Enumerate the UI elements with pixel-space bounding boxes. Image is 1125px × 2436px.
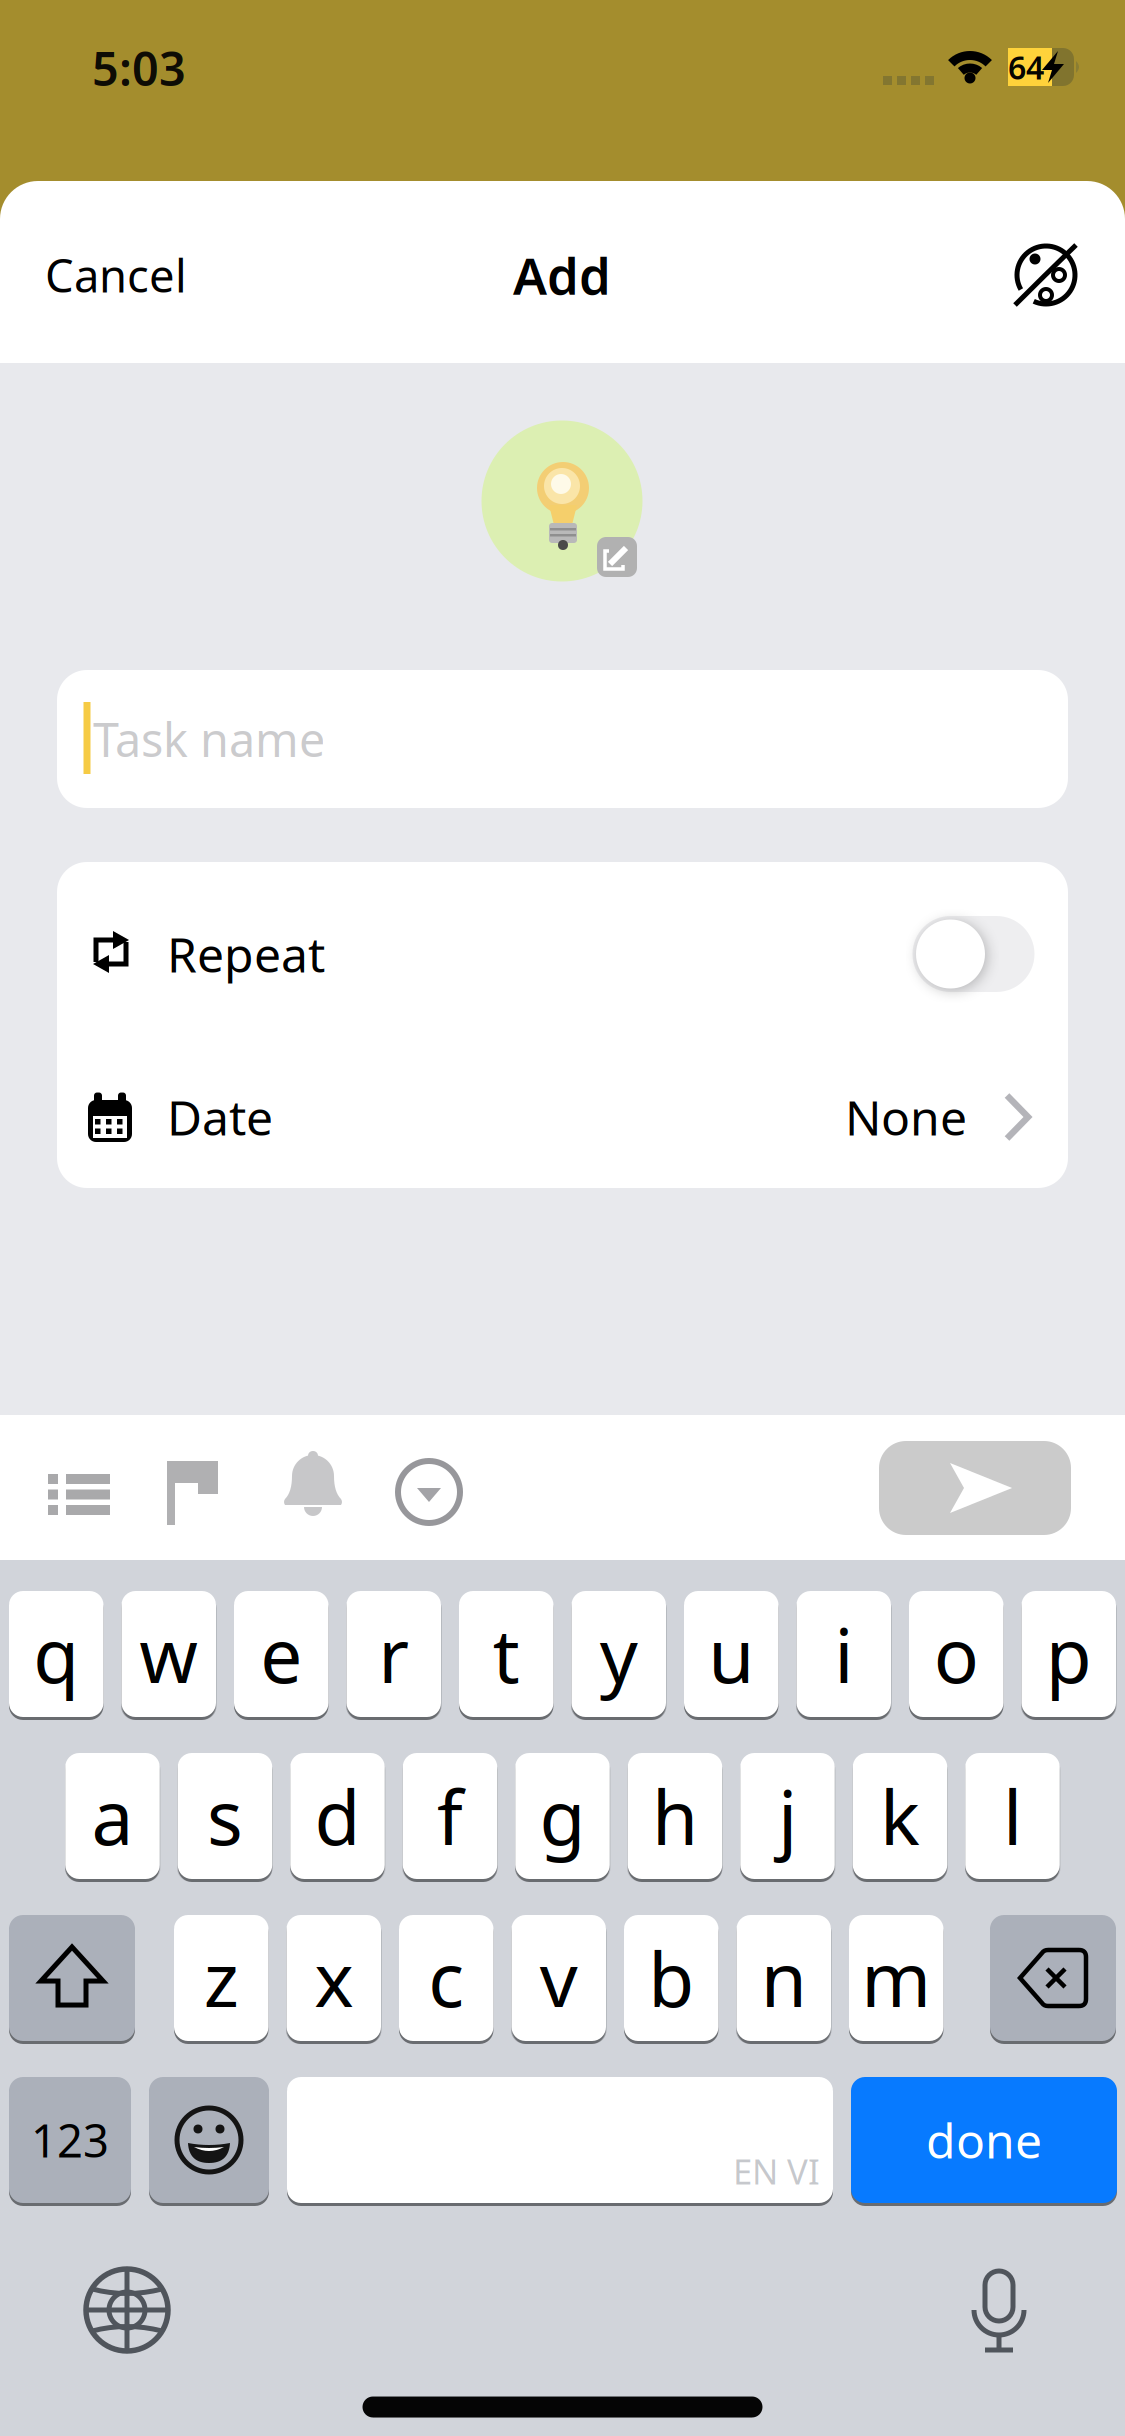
staticText: EN VI — [733, 2148, 820, 2194]
button[interactable]: done — [851, 2077, 1117, 2203]
button[interactable]: t — [459, 1591, 553, 1717]
staticText: h — [652, 1766, 698, 1866]
staticText: b — [648, 1928, 694, 2028]
staticText: Repeat — [167, 922, 325, 986]
staticText: c — [428, 1928, 464, 2028]
button[interactable]: m — [849, 1915, 943, 2041]
staticText: None — [845, 1085, 967, 1149]
button[interactable]: Dictate — [949, 2263, 1049, 2363]
button[interactable]: Collapse — [384, 1447, 474, 1537]
button[interactable]: k — [853, 1753, 947, 1879]
staticText: o — [934, 1604, 979, 1704]
button[interactable]: Edit icon — [597, 537, 637, 577]
button[interactable]: l — [965, 1753, 1060, 1879]
button[interactable]: Priority — [152, 1447, 242, 1537]
button[interactable]: e — [234, 1591, 328, 1717]
staticText: j — [778, 1766, 797, 1866]
button[interactable]: q — [9, 1591, 103, 1717]
button[interactable]: c — [399, 1915, 493, 2041]
button[interactable]: Shift — [9, 1915, 135, 2041]
button[interactable]: Emoji — [149, 2077, 269, 2203]
staticText: a — [91, 1766, 133, 1866]
staticText: 123 — [31, 2110, 109, 2170]
staticText: u — [708, 1604, 754, 1704]
button[interactable]: Cancel — [6, 220, 226, 330]
button[interactable]: u — [684, 1591, 778, 1717]
staticText: q — [33, 1604, 79, 1704]
button[interactable]: d — [290, 1753, 385, 1879]
staticText: z — [204, 1928, 239, 2028]
button[interactable]: i — [796, 1591, 891, 1717]
staticText: p — [1046, 1604, 1092, 1704]
staticText: x — [314, 1928, 353, 2028]
button[interactable]: x — [286, 1915, 381, 2041]
button[interactable]: 123 — [9, 2077, 131, 2203]
button[interactable]: Delete — [990, 1915, 1116, 2041]
button[interactable]: Save — [879, 1441, 1071, 1535]
button[interactable]: Lists — [34, 1446, 124, 1536]
staticText: i — [834, 1604, 853, 1704]
staticText: 64 — [1008, 46, 1044, 88]
staticText: Cancel — [45, 245, 187, 305]
staticText: d — [314, 1766, 360, 1866]
button[interactable]: b — [624, 1915, 718, 2041]
button[interactable]: w — [121, 1591, 216, 1717]
staticText: s — [207, 1766, 243, 1866]
staticText: n — [761, 1928, 807, 2028]
staticText: l — [1003, 1766, 1022, 1866]
staticText: Add — [513, 241, 611, 309]
button[interactable]: a — [65, 1753, 160, 1879]
button[interactable]: Repeat — [912, 916, 1034, 992]
button[interactable]: o — [909, 1591, 1003, 1717]
staticText: k — [880, 1766, 920, 1866]
staticText: v — [540, 1928, 578, 2028]
button[interactable]: g — [515, 1753, 610, 1879]
button[interactable]: h — [628, 1753, 722, 1879]
staticText: 5:03 — [92, 37, 186, 99]
button[interactable]: f — [403, 1753, 497, 1879]
staticText: m — [861, 1928, 931, 2028]
staticText: y — [600, 1604, 638, 1704]
button[interactable]: Theme — [991, 220, 1101, 330]
button[interactable]: n — [736, 1915, 831, 2041]
button[interactable]: v — [511, 1915, 606, 2041]
button[interactable]: Next keyboard — [77, 2260, 177, 2360]
button[interactable]: p — [1021, 1591, 1116, 1717]
staticText: Date — [167, 1085, 273, 1149]
button[interactable]: Date — [57, 1035, 1068, 1198]
staticText: f — [437, 1766, 463, 1866]
button[interactable]: r — [346, 1591, 441, 1717]
staticText: e — [260, 1604, 302, 1704]
button[interactable]: z — [174, 1915, 268, 2041]
staticText: Task name — [93, 708, 325, 770]
staticText: r — [378, 1604, 409, 1704]
button[interactable]: Space — [287, 2077, 833, 2203]
staticText: w — [139, 1604, 198, 1704]
staticText: t — [493, 1604, 520, 1704]
button[interactable]: s — [178, 1753, 272, 1879]
button[interactable]: j — [740, 1753, 835, 1879]
button[interactable]: y — [571, 1591, 666, 1717]
button[interactable]: Reminder — [268, 1446, 358, 1536]
staticText: done — [926, 2108, 1042, 2172]
staticText: g — [539, 1766, 585, 1866]
